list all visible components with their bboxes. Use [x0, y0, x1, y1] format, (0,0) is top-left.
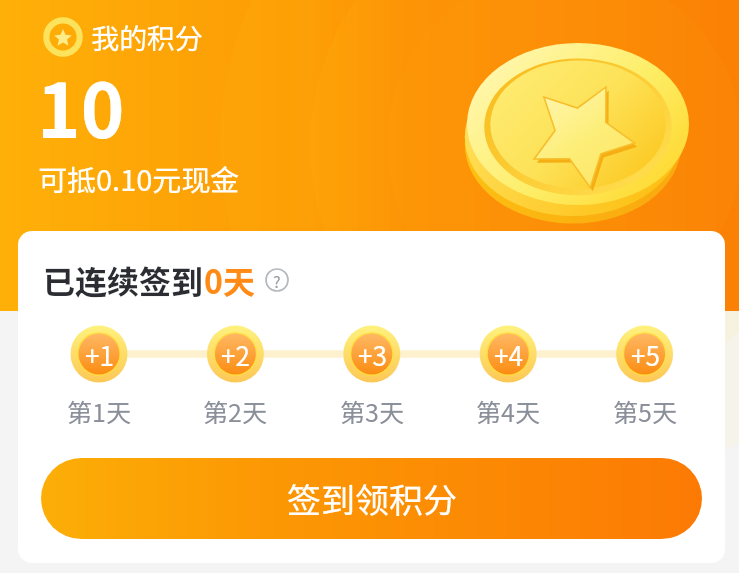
staticText: 已连续签到	[43, 257, 204, 303]
staticText: 我的积分	[91, 17, 204, 58]
staticText: 10	[37, 52, 125, 159]
staticText: +3	[358, 336, 387, 374]
staticText: 第3天	[340, 393, 404, 429]
staticText: 第4天	[476, 393, 540, 429]
staticText: 可抵0.10元现金	[38, 157, 240, 199]
staticText: 签到领积分	[287, 474, 457, 523]
button[interactable]: 签到领积分	[41, 458, 702, 539]
staticText: 第2天	[203, 393, 267, 429]
staticText: +2	[221, 336, 250, 374]
staticText: ?	[273, 269, 281, 292]
staticText: +5	[631, 336, 660, 374]
staticText: 第1天	[67, 393, 131, 429]
staticText: 第5天	[613, 393, 677, 429]
staticText: +1	[85, 336, 114, 374]
staticText: 0天	[204, 257, 255, 303]
staticText: +4	[494, 336, 523, 374]
button[interactable]: Help	[265, 268, 289, 292]
other: Points badge	[42, 16, 84, 58]
